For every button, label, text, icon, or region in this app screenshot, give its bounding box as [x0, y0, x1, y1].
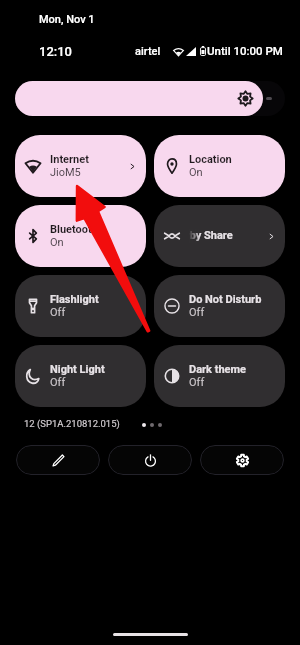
- button[interactable]: Night Light: [15, 345, 146, 407]
- button[interactable]: Do Not Disturb: [154, 275, 285, 337]
- staticText: Off: [189, 306, 205, 319]
- staticText: Do Not Disturb: [189, 293, 262, 306]
- button[interactable]: Location: [154, 135, 285, 197]
- staticText: Flashlight: [50, 293, 99, 306]
- button[interactable]: Internet: [15, 135, 146, 197]
- button[interactable]: Power: [108, 445, 192, 475]
- staticText: Nearby Share: [189, 229, 233, 242]
- staticText: Until 10:00 PM: [207, 44, 283, 57]
- staticText: airtel: [135, 45, 161, 58]
- staticText: 12 (SP1A.210812.015): [24, 418, 120, 429]
- staticText: 12:10: [39, 44, 72, 59]
- staticText: JioM5: [50, 166, 81, 179]
- button[interactable]: Dark theme: [154, 345, 285, 407]
- staticText: Mon, Nov 1: [39, 13, 95, 26]
- button[interactable]: Edit: [16, 445, 100, 475]
- button[interactable]: Settings: [200, 445, 284, 475]
- button[interactable]: Bluetooth: [15, 205, 146, 267]
- staticText: Dark theme: [189, 363, 246, 376]
- button[interactable]: Brightness: [15, 81, 263, 116]
- staticText: Off: [50, 306, 66, 319]
- staticText: Bluetooth: [50, 223, 98, 236]
- staticText: Off: [50, 376, 66, 389]
- staticText: On: [50, 236, 64, 249]
- staticText: Off: [189, 376, 205, 389]
- staticText: Internet: [50, 153, 89, 166]
- button[interactable]: Nearby Share: [154, 205, 285, 267]
- staticText: On: [189, 166, 203, 179]
- staticText: Night Light: [50, 363, 105, 376]
- button[interactable]: Flashlight: [15, 275, 146, 337]
- staticText: Location: [189, 153, 232, 166]
